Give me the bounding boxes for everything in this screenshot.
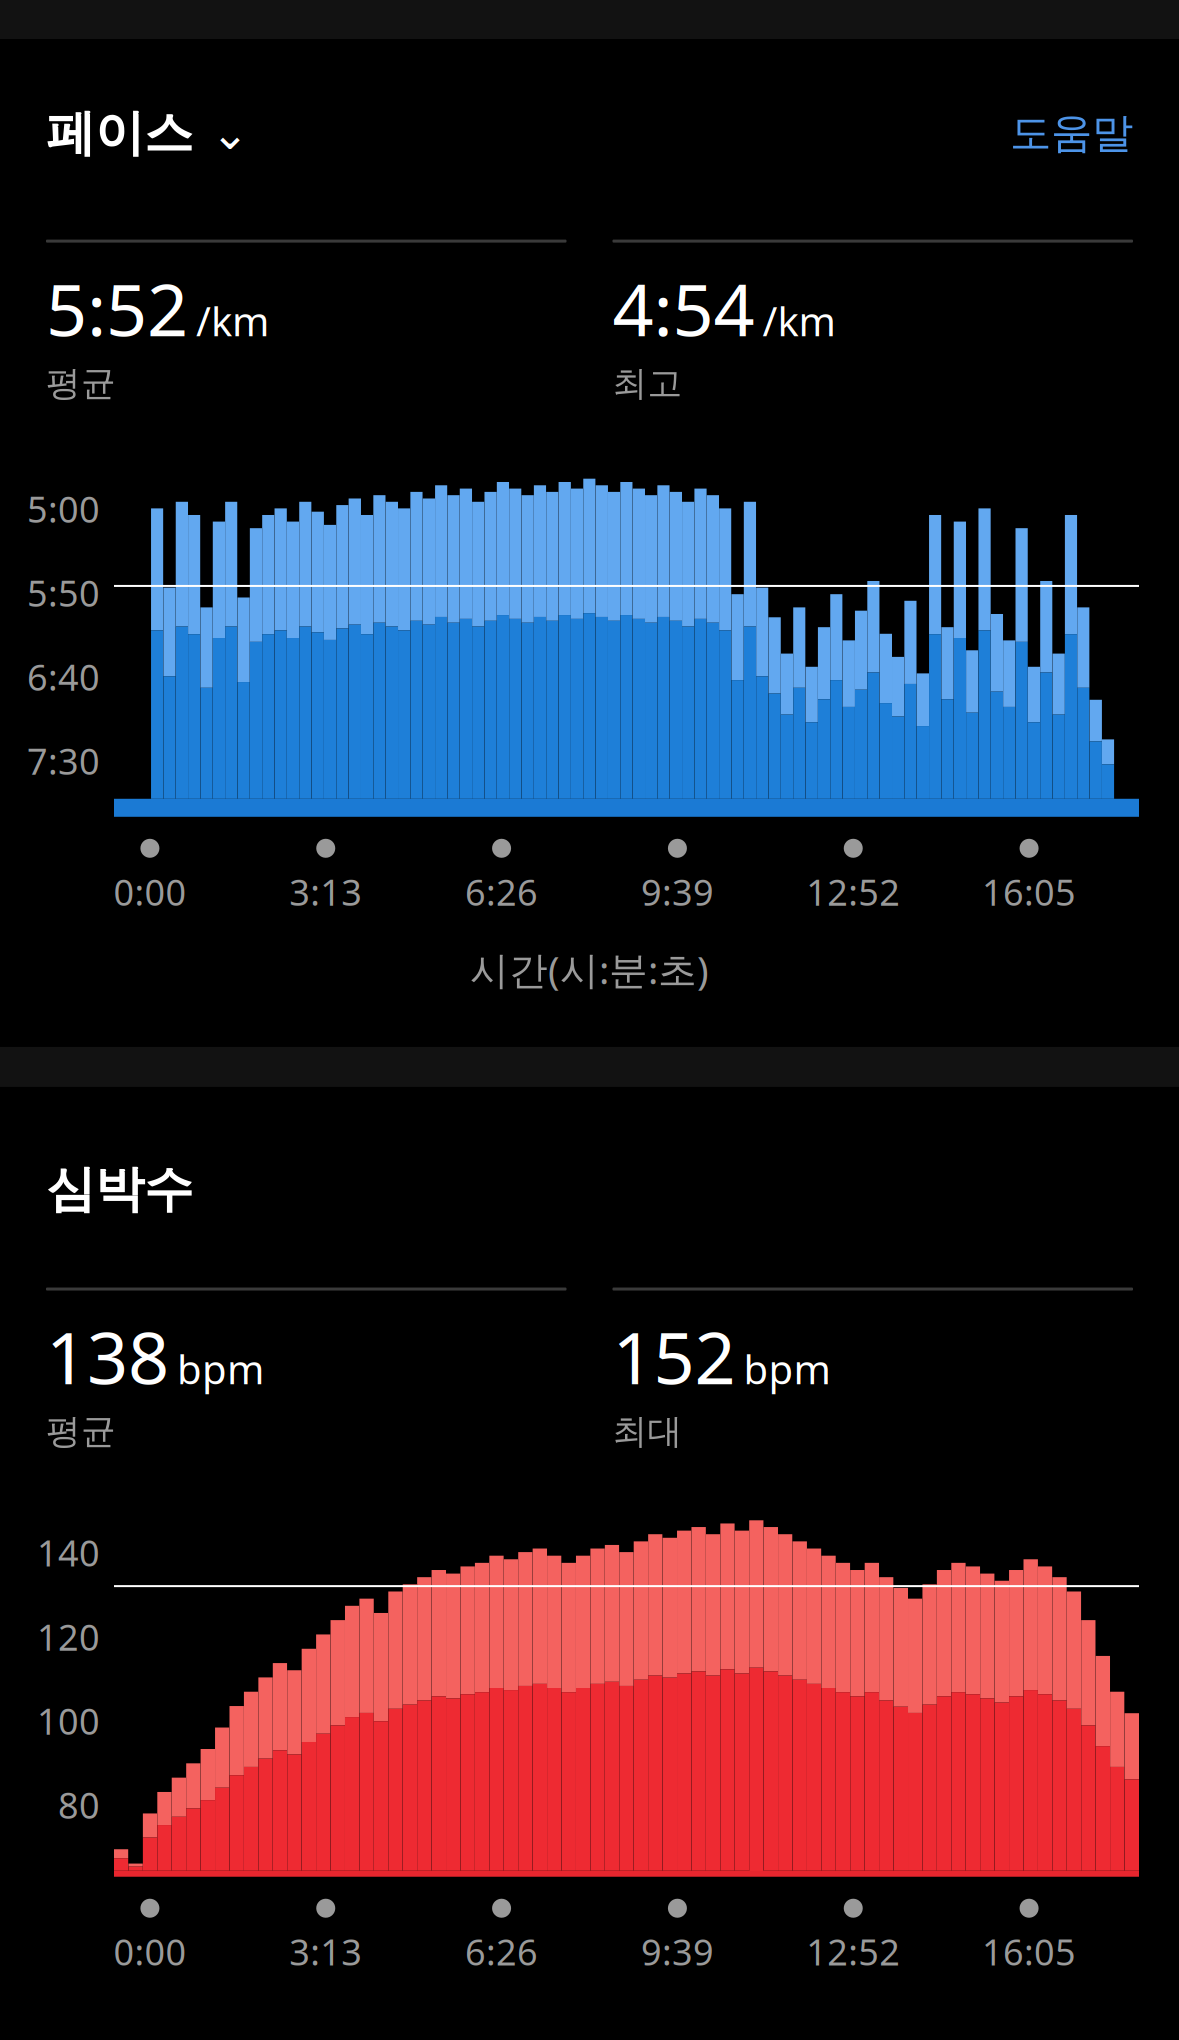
staticText: 80 (58, 1781, 100, 1829)
staticText: 12:52 (806, 868, 900, 916)
staticText: 152 (612, 1308, 735, 1404)
staticText: 시간(시:분:초) (470, 944, 709, 995)
staticText: 6:26 (465, 868, 538, 916)
staticText: 9:39 (641, 1928, 714, 1975)
staticText: 7:30 (27, 737, 100, 785)
staticText: 페이스 (46, 103, 193, 164)
staticText: 138 (46, 1308, 169, 1404)
staticText: 0:00 (113, 1928, 186, 1975)
staticText: 심박수 (46, 1159, 193, 1219)
staticText: 12:52 (806, 1928, 900, 1975)
staticText: /km (762, 294, 835, 347)
staticText: 최고 (612, 362, 682, 405)
staticText: 4:54 (612, 261, 754, 356)
staticText: 100 (37, 1697, 100, 1745)
staticText: 평균 (46, 362, 116, 405)
staticText: bpm (177, 1342, 264, 1395)
staticText: 도움말 (1010, 108, 1133, 159)
staticText: 6:26 (465, 1928, 538, 1975)
staticText: 5:00 (27, 485, 100, 533)
staticText: 3:13 (289, 868, 362, 916)
staticText: 최대 (612, 1410, 682, 1453)
staticText: /km (196, 294, 269, 347)
staticText: 0:00 (113, 868, 186, 916)
staticText: 16:05 (982, 1928, 1076, 1975)
staticText: 9:39 (641, 868, 714, 916)
staticText: 평균 (46, 1410, 116, 1453)
staticText: 140 (37, 1529, 100, 1576)
staticText: 16:05 (982, 868, 1076, 916)
staticText: 5:50 (27, 569, 100, 617)
staticText: 6:40 (27, 653, 100, 701)
button[interactable]: 페이스 (46, 97, 249, 170)
staticText: ⌄ (211, 108, 249, 159)
staticText: 3:13 (289, 1928, 362, 1975)
staticText: 5:52 (46, 261, 188, 356)
staticText: bpm (743, 1342, 830, 1395)
staticText: 120 (37, 1613, 100, 1661)
button[interactable]: 도움말 (1010, 102, 1133, 165)
